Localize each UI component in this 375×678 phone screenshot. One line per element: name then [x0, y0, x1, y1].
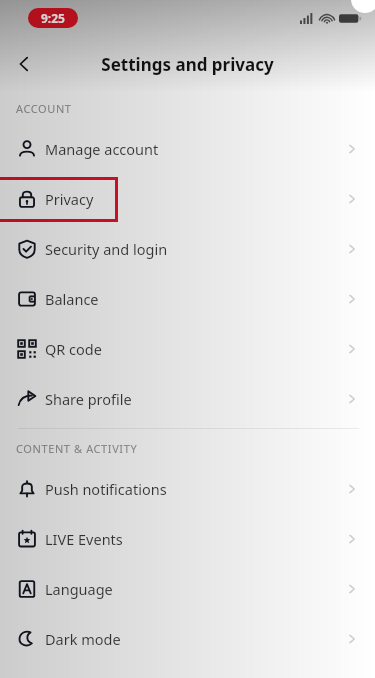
staticText: CONTENT & ACTIVITY [16, 441, 138, 456]
button[interactable]: Back [0, 40, 48, 88]
staticText: LIVE Events [45, 529, 123, 549]
staticText: QR code [45, 339, 102, 359]
button[interactable]: Privacy [0, 174, 375, 224]
staticText: Dark mode [45, 629, 121, 649]
staticText: Security and login [45, 239, 168, 259]
button[interactable]: LIVE Events [0, 514, 375, 564]
button[interactable]: Manage account [0, 124, 375, 174]
staticText: Share profile [45, 389, 132, 409]
staticText: Manage account [45, 139, 159, 159]
staticText: Language [45, 579, 113, 599]
button[interactable]: Language [0, 564, 375, 614]
button[interactable]: Balance [0, 274, 375, 324]
button[interactable]: Share profile [0, 374, 375, 424]
staticText: Push notifications [45, 479, 167, 499]
button[interactable]: QR code [0, 324, 375, 374]
staticText: ACCOUNT [16, 101, 72, 116]
button[interactable]: Dark mode [0, 614, 375, 664]
button[interactable]: Security and login [0, 224, 375, 274]
staticText: 9:25 [41, 10, 65, 26]
staticText: Balance [45, 289, 99, 309]
staticText: Privacy [45, 189, 94, 209]
staticText: Settings and privacy [101, 53, 274, 76]
button[interactable]: Push notifications [0, 464, 375, 514]
